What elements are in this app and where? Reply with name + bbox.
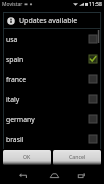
button[interactable]: germany (3, 109, 101, 129)
button[interactable]: brasil (3, 129, 101, 149)
button[interactable]: italy (3, 89, 101, 109)
staticText: Cancel (69, 153, 86, 160)
staticText: france (6, 75, 27, 84)
button[interactable]: usa (3, 29, 101, 49)
button[interactable]: spain (3, 49, 101, 69)
button[interactable]: OK (3, 150, 51, 165)
button[interactable]: Recent apps (66, 166, 96, 184)
button[interactable]: Cancel (53, 150, 101, 165)
staticText: usa (6, 35, 18, 44)
staticText: Movistar (2, 1, 23, 8)
staticText: 11:58 (89, 1, 102, 8)
button[interactable]: Back (8, 166, 38, 184)
staticText: OK (23, 153, 31, 160)
staticText: italy (6, 95, 20, 104)
staticText: Updates available (19, 16, 78, 26)
staticText: germany (6, 115, 35, 124)
button[interactable]: france (3, 69, 101, 89)
staticText: spain (6, 55, 24, 64)
button[interactable]: Home (39, 166, 69, 184)
staticText: brasil (6, 135, 24, 144)
